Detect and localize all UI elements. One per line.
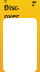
staticText: ●●● xyxy=(32,0,36,7)
staticText: 9:41 xyxy=(4,0,8,9)
staticText: Discover xyxy=(4,3,19,21)
